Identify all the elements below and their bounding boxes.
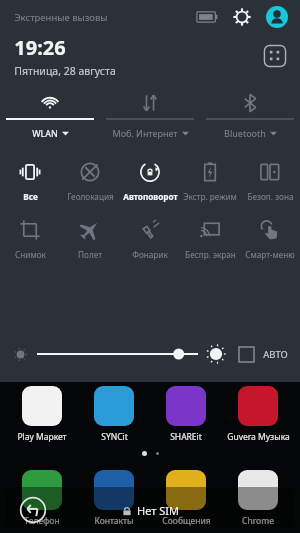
button[interactable]: Battery 100 percent: [196, 8, 218, 26]
staticText: Полет: [78, 249, 102, 260]
staticText: Автоповорот: [123, 191, 178, 202]
button[interactable]: АВТО: [239, 347, 288, 362]
button[interactable]: Back: [18, 495, 48, 525]
button[interactable]: Settings: [230, 5, 254, 29]
staticText: Guvera Музыка: [227, 431, 290, 443]
button[interactable]: Телефон: [6, 470, 78, 527]
button[interactable]: Беспр. экран: [180, 218, 240, 260]
staticText: Chrome: [242, 515, 274, 527]
staticText: Телефон: [24, 515, 60, 527]
staticText: Экстренные вызовы: [14, 11, 108, 24]
button[interactable]: Brightness slider: [37, 345, 198, 363]
staticText: Фонарик: [132, 249, 168, 260]
staticText: Нет SIM: [137, 503, 179, 518]
button[interactable]: Автоповорот: [120, 160, 180, 202]
button[interactable]: User profile: [264, 4, 290, 30]
button[interactable]: Экстр. режим: [180, 160, 240, 202]
button[interactable]: Контакты: [78, 470, 150, 527]
staticText: Смарт-меню: [245, 249, 295, 260]
staticText: Сообщения: [162, 515, 211, 527]
staticText: Play Маркет: [17, 431, 67, 443]
button[interactable]: SYNCit: [78, 386, 150, 443]
staticText: Контакты: [94, 515, 134, 527]
button[interactable]: Bluetooth: [200, 88, 300, 146]
staticText: Снимок: [15, 249, 46, 260]
button[interactable]: Безоп. зона: [240, 160, 300, 202]
staticText: АВТО: [263, 348, 288, 361]
staticText: SYNCit: [101, 431, 128, 443]
staticText: Bluetooth: [224, 127, 266, 139]
button[interactable]: Сообщения: [150, 470, 222, 527]
staticText: Все: [23, 191, 38, 202]
staticText: Безоп. зона: [247, 191, 294, 202]
button[interactable]: Edit tiles: [262, 43, 288, 69]
button[interactable]: Геолокация: [60, 160, 120, 202]
staticText: 19:26: [14, 34, 66, 61]
staticText: SHAREit: [170, 431, 202, 443]
staticText: Моб. Интернет: [112, 127, 178, 139]
button[interactable]: Guvera Музыка: [222, 386, 294, 443]
button[interactable]: WLAN: [0, 88, 100, 146]
button[interactable]: Полет: [60, 218, 120, 260]
staticText: Геолокация: [67, 191, 114, 202]
button[interactable]: Моб. Интернет: [100, 88, 200, 146]
staticText: Беспр. экран: [185, 249, 236, 260]
staticText: Пятница, 28 августа: [14, 64, 116, 78]
button[interactable]: Play Маркет: [6, 386, 78, 443]
button[interactable]: Смарт-меню: [240, 218, 300, 260]
button[interactable]: Chrome: [222, 470, 294, 527]
staticText: Экстр. режим: [183, 191, 237, 202]
button[interactable]: SHAREit: [150, 386, 222, 443]
button[interactable]: Фонарик: [120, 218, 180, 260]
button[interactable]: Снимок: [0, 218, 60, 260]
button[interactable]: Все: [0, 160, 60, 202]
staticText: WLAN: [32, 127, 58, 139]
